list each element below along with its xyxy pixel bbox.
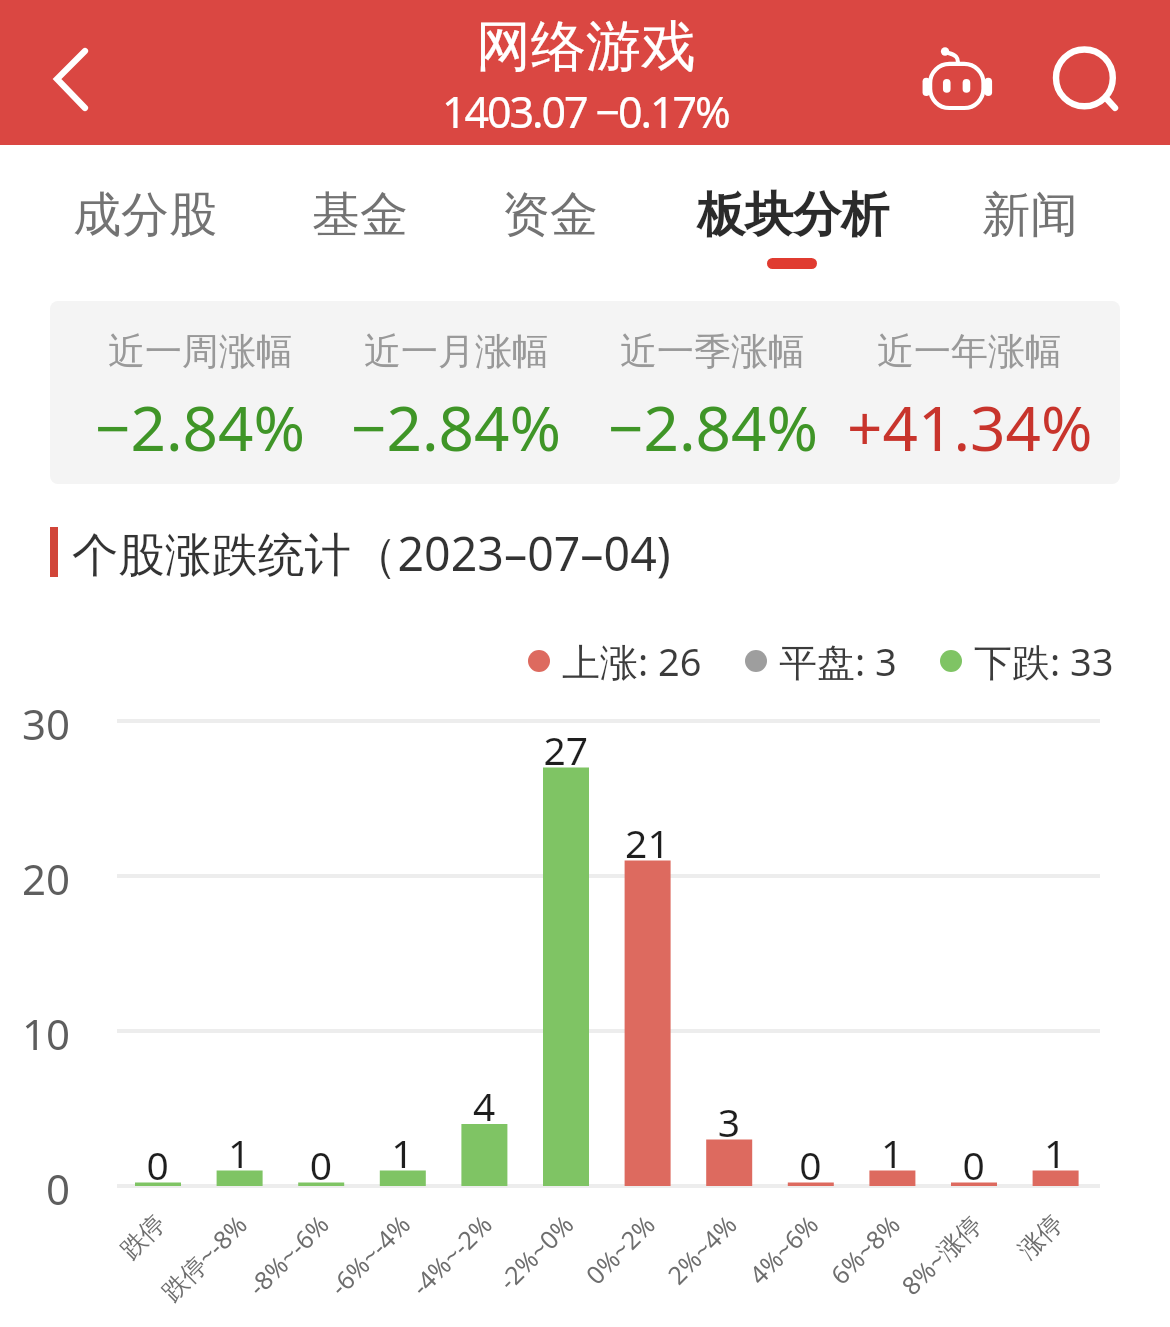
staticText: 近一周涨幅 [108, 328, 293, 375]
button[interactable]: Search [1030, 20, 1135, 125]
staticText: 个股涨跌统计（2023–07–04) [72, 521, 671, 585]
button[interactable]: 基金 [310, 163, 410, 267]
staticText: 网络游戏 [476, 12, 696, 81]
button[interactable]: 资金 [500, 163, 600, 267]
staticText: 1403.07 −0.17% [442, 82, 729, 141]
staticText: 近一月涨幅 [364, 328, 549, 375]
staticText: −2.84% [95, 385, 305, 469]
button[interactable]: AI assistant [910, 25, 1010, 125]
staticText: 板块分析 [697, 185, 889, 245]
button[interactable]: 新闻 [980, 163, 1080, 267]
staticText: 资金 [502, 185, 598, 245]
staticText: 基金 [312, 185, 408, 245]
staticText: 近一年涨幅 [877, 328, 1062, 375]
button[interactable]: Back [20, 25, 120, 125]
staticText: −2.84% [351, 385, 561, 469]
staticText: 成分股 [73, 185, 217, 245]
staticText: 近一季涨幅 [620, 328, 805, 375]
staticText: 新闻 [982, 185, 1078, 245]
button[interactable]: 板块分析 [695, 163, 890, 267]
staticText: −2.84% [608, 385, 818, 469]
button[interactable]: 成分股 [72, 163, 217, 267]
staticText: +41.34% [847, 385, 1093, 469]
